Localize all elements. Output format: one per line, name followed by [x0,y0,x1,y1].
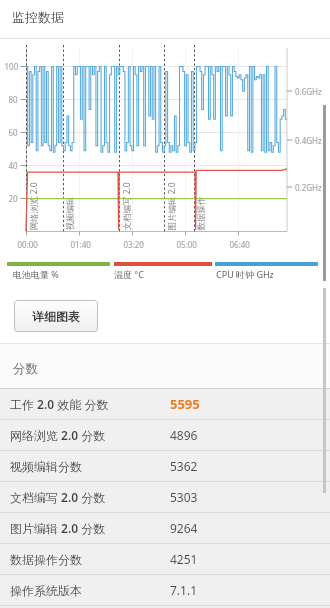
staticText: CPU 时钟 GHz [216,268,274,280]
staticText: 图片编辑 2.0 分数 [10,520,106,536]
staticText: 分数 [13,361,38,377]
staticText: 操作系统版本 [10,583,82,598]
staticText: 视频编辑分数 [10,459,82,474]
staticText: 数据操作分数 [10,552,82,567]
button[interactable]: 文档编写 2.0 分数 [0,482,330,512]
staticText: 文档编写 2.0 分数 [10,489,106,505]
staticText: 电池电量 % [13,268,59,280]
button[interactable]: 操作系统版本 [0,575,330,605]
staticText: 4896 [170,427,198,443]
staticText: 5362 [170,458,198,474]
staticText: 工作 2.0 效能 分数 [10,396,109,412]
staticText: 5303 [170,489,198,505]
staticText: 温度 °C [114,268,144,280]
button[interactable]: 详细图表 [14,300,98,332]
button[interactable]: 数据操作分数 [0,544,330,574]
button[interactable]: 图片编辑 2.0 分数 [0,513,330,543]
staticText: 监控数据 [12,9,64,25]
button[interactable]: 网络浏览 2.0 分数 [0,420,330,450]
staticText: 网络浏览 2.0 分数 [10,427,106,443]
button[interactable]: 工作 2.0 效能 分数 [0,389,330,419]
staticText: 7.1.1 [170,582,198,598]
staticText: 4251 [170,551,198,567]
staticText: 5595 [170,395,200,413]
button[interactable]: 监控数据 [0,0,330,38]
button[interactable]: 视频编辑分数 [0,451,330,481]
staticText: 9264 [170,520,198,536]
staticText: 详细图表 [32,309,80,324]
